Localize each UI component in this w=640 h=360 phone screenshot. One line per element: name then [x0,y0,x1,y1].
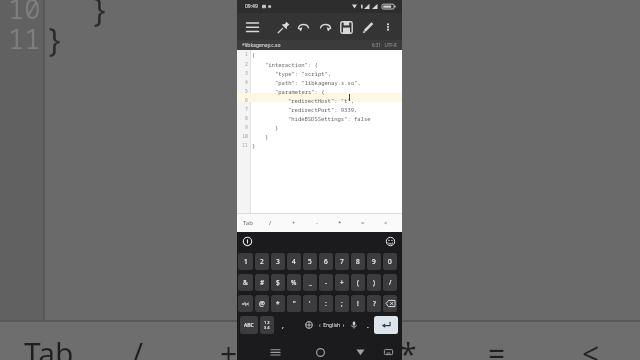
button[interactable]: < [374,213,397,232]
button[interactable]: + [282,213,305,232]
button[interactable]: 6 [319,253,333,270]
button[interactable]: 2 [255,253,269,270]
button[interactable]: " [287,295,301,312]
staticText: Tab [24,333,74,360]
button[interactable]: Hide keyboard [382,346,394,358]
button[interactable]: 7 [335,253,349,270]
button[interactable]: $ [271,274,285,291]
staticText: 9 [372,257,376,266]
button[interactable]: 1 [237,50,402,213]
staticText: - [316,219,318,227]
staticText: ) [373,278,375,287]
button[interactable]: , [276,316,290,334]
button[interactable]: - [319,274,333,291]
button[interactable]: / [259,213,282,232]
staticText: 10 [237,133,248,140]
staticText: + [292,219,296,227]
button[interactable]: : [319,295,333,312]
staticText: "hideBSDSSettings": false [288,115,371,122]
staticText: * [338,219,342,227]
button[interactable]: % [287,274,301,291]
button[interactable]: ; [335,295,349,312]
staticText: . [367,321,369,330]
staticText: ' [309,299,311,308]
staticText: : [325,299,327,308]
button[interactable]: 9 [367,253,381,270]
button[interactable]: Backspace [383,295,397,312]
staticText: _ [309,278,312,287]
button[interactable]: Tab [237,213,259,232]
staticText: "interaction": { [265,61,318,68]
staticText: / [132,333,144,360]
button[interactable]: ABC [240,316,258,334]
button[interactable]: Menu [243,18,261,36]
staticText: 5 [308,257,312,266]
staticText: } [275,124,279,131]
button[interactable]: Home [313,345,327,359]
staticText: { [252,51,256,58]
staticText: 3 [276,257,280,266]
staticText: ! [357,299,359,308]
staticText: # [260,278,265,287]
button[interactable]: *libkagenay.c.so [237,40,402,50]
button[interactable]: Edit [359,18,377,36]
staticText: * [276,299,280,308]
staticText: "path": "libkagenay.s.so", [275,79,361,86]
staticText: = [361,219,365,227]
button[interactable]: & [238,274,253,291]
button[interactable]: Undo [294,18,312,36]
button[interactable]: - [305,213,328,232]
staticText: - [325,278,328,287]
button[interactable]: 5 [303,253,317,270]
staticText: , [282,321,284,330]
button[interactable]: 0 [383,253,397,270]
button[interactable]: Redo [316,18,334,36]
button[interactable]: ( [351,274,365,291]
staticText: } [252,142,256,149]
button[interactable]: 1 [238,253,253,270]
button[interactable]: * [271,295,285,312]
button[interactable]: 1 2 [260,316,274,334]
button[interactable]: =\< [238,295,253,312]
button[interactable]: Save [337,18,355,36]
button[interactable]: 3 [271,253,285,270]
staticText: < [384,219,388,227]
button[interactable]: Pin [274,18,292,36]
button[interactable]: # [255,274,269,291]
button[interactable]: ! [351,295,365,312]
button[interactable]: @ [255,295,269,312]
staticText: 5 [237,88,248,95]
staticText: ? [373,299,376,308]
button[interactable]: ? [367,295,381,312]
staticText: 6 [324,257,328,266]
staticText: " [293,299,296,308]
button[interactable]: Recents [268,345,282,359]
staticText: } [265,133,269,140]
button[interactable]: + [335,274,349,291]
button[interactable]: Emoji [385,236,395,246]
button[interactable]: Keyboard settings [242,236,252,246]
staticText: "parameters": { [275,88,325,95]
button[interactable]: _ [303,274,317,291]
button[interactable]: Back [353,345,367,359]
button[interactable]: Enter [374,316,398,334]
button[interactable]: 8 [351,253,365,270]
button[interactable]: ‹ English › [291,316,371,334]
button[interactable]: More options [379,18,397,36]
staticText: =\< [242,301,249,307]
staticText: 10 [8,0,41,27]
button[interactable]: ) [367,274,381,291]
staticText: 9 [237,124,248,131]
button[interactable]: . [361,316,375,334]
button[interactable]: 4 [287,253,301,270]
staticText: 8 [237,115,248,122]
button[interactable]: = [351,213,374,232]
button[interactable]: * [328,213,351,232]
button[interactable]: / [383,274,397,291]
staticText: % [291,278,297,287]
staticText: ABC [244,322,254,329]
staticText: *libkagenay.c.so [242,42,281,49]
staticText: / [389,278,392,287]
staticText: 11 [8,20,41,57]
button[interactable]: ' [303,295,317,312]
